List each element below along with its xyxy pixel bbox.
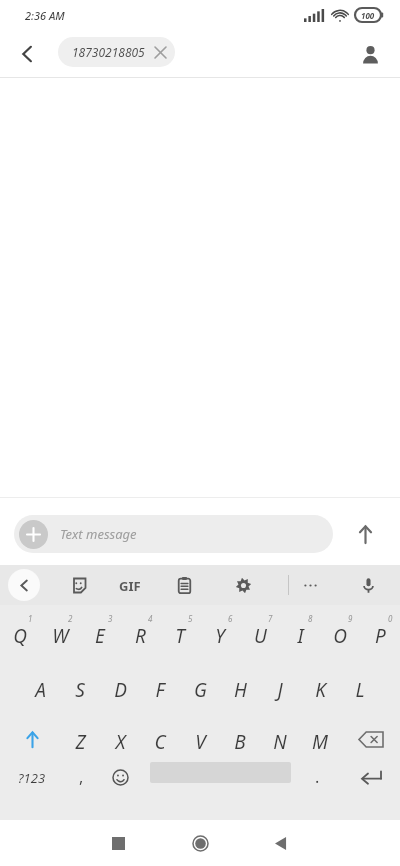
button[interactable]: V — [180, 713, 220, 765]
staticText: W — [52, 623, 69, 649]
button[interactable]: J — [260, 661, 300, 713]
staticText: 6 — [228, 613, 233, 624]
staticText: , — [79, 766, 84, 788]
staticText: ?123 — [18, 769, 46, 787]
button[interactable]: G — [180, 661, 220, 713]
button[interactable]: E — [80, 607, 120, 659]
button[interactable]: C — [140, 713, 180, 765]
staticText: 100 — [361, 10, 375, 21]
button[interactable]: Close toolbar — [8, 569, 40, 601]
button[interactable]: I — [280, 607, 320, 659]
button[interactable]: Settings — [227, 569, 259, 601]
button[interactable]: N — [260, 713, 300, 765]
button[interactable]: Q — [0, 607, 40, 659]
button[interactable]: , — [62, 761, 100, 793]
button[interactable]: X — [100, 713, 140, 765]
button[interactable]: S — [60, 661, 100, 713]
button[interactable]: R — [120, 607, 160, 659]
staticText: 1 — [28, 613, 33, 624]
staticText: O — [333, 623, 347, 649]
staticText: T — [175, 623, 185, 649]
button[interactable]: U — [240, 607, 280, 659]
staticText: X — [115, 729, 126, 755]
staticText: 18730218805 — [72, 44, 145, 60]
button[interactable]: P — [360, 607, 400, 659]
staticText: Z — [75, 729, 86, 755]
staticText: P — [375, 623, 386, 649]
button[interactable]: Back — [261, 823, 301, 863]
staticText: L — [355, 677, 365, 703]
button[interactable]: GIF — [119, 577, 141, 595]
button[interactable]: K — [300, 661, 340, 713]
staticText: C — [154, 729, 166, 755]
staticText: K — [315, 677, 326, 703]
button[interactable]: Emoji — [103, 761, 137, 793]
button[interactable]: Y — [200, 607, 240, 659]
button[interactable]: Stickers — [62, 569, 94, 601]
button[interactable]: 18730218805 — [58, 37, 175, 67]
button[interactable]: Contact details — [350, 34, 390, 74]
staticText: D — [114, 677, 127, 703]
button[interactable]: Add attachment — [14, 515, 333, 553]
button[interactable]: D — [100, 661, 140, 713]
button[interactable]: Z — [60, 713, 100, 765]
staticText: M — [312, 729, 328, 755]
button[interactable]: Send — [345, 514, 385, 554]
button[interactable]: Enter — [348, 761, 394, 793]
button[interactable]: Add attachment — [19, 520, 48, 549]
staticText: U — [254, 623, 267, 649]
staticText: N — [273, 729, 287, 755]
staticText: 4 — [148, 613, 153, 624]
staticText: A — [35, 677, 46, 703]
staticText: 7 — [268, 613, 273, 624]
staticText: H — [234, 677, 247, 703]
staticText: Y — [215, 623, 225, 649]
button[interactable]: L — [340, 661, 380, 713]
staticText: 2 — [68, 613, 73, 624]
staticText: G — [194, 677, 207, 703]
button[interactable]: Backspace — [349, 715, 393, 763]
staticText: 5 — [188, 613, 193, 624]
button[interactable]: Home — [180, 823, 220, 863]
button[interactable]: Recent apps — [98, 823, 138, 863]
button[interactable]: F — [140, 661, 180, 713]
button[interactable]: Back — [8, 34, 48, 74]
staticText: F — [155, 677, 165, 703]
staticText: 0 — [388, 613, 393, 624]
staticText: E — [95, 623, 105, 649]
staticText: R — [135, 623, 146, 649]
button[interactable]: H — [220, 661, 260, 713]
staticText: 2:36 AM — [25, 8, 65, 23]
button[interactable]: ?123 — [6, 763, 58, 793]
staticText: B — [234, 729, 246, 755]
button[interactable]: More options — [294, 569, 326, 601]
button[interactable]: B — [220, 713, 260, 765]
button[interactable]: M — [300, 713, 340, 765]
staticText: J — [277, 677, 283, 703]
staticText: . — [315, 766, 320, 788]
staticText: S — [75, 677, 85, 703]
button[interactable]: Shift — [12, 715, 52, 763]
staticText: Text message — [60, 525, 137, 543]
button[interactable]: O — [320, 607, 360, 659]
button[interactable]: W — [40, 607, 80, 659]
button[interactable]: T — [160, 607, 200, 659]
staticText: 9 — [348, 613, 353, 624]
staticText: 8 — [308, 613, 313, 624]
button[interactable]: A — [20, 661, 60, 713]
button[interactable]: . — [300, 761, 334, 793]
staticText: V — [195, 729, 206, 755]
button[interactable]: Clipboard — [168, 569, 200, 601]
staticText: Q — [13, 623, 27, 649]
staticText: I — [297, 623, 304, 649]
staticText: 3 — [108, 613, 113, 624]
button[interactable]: Voice input — [352, 569, 384, 601]
